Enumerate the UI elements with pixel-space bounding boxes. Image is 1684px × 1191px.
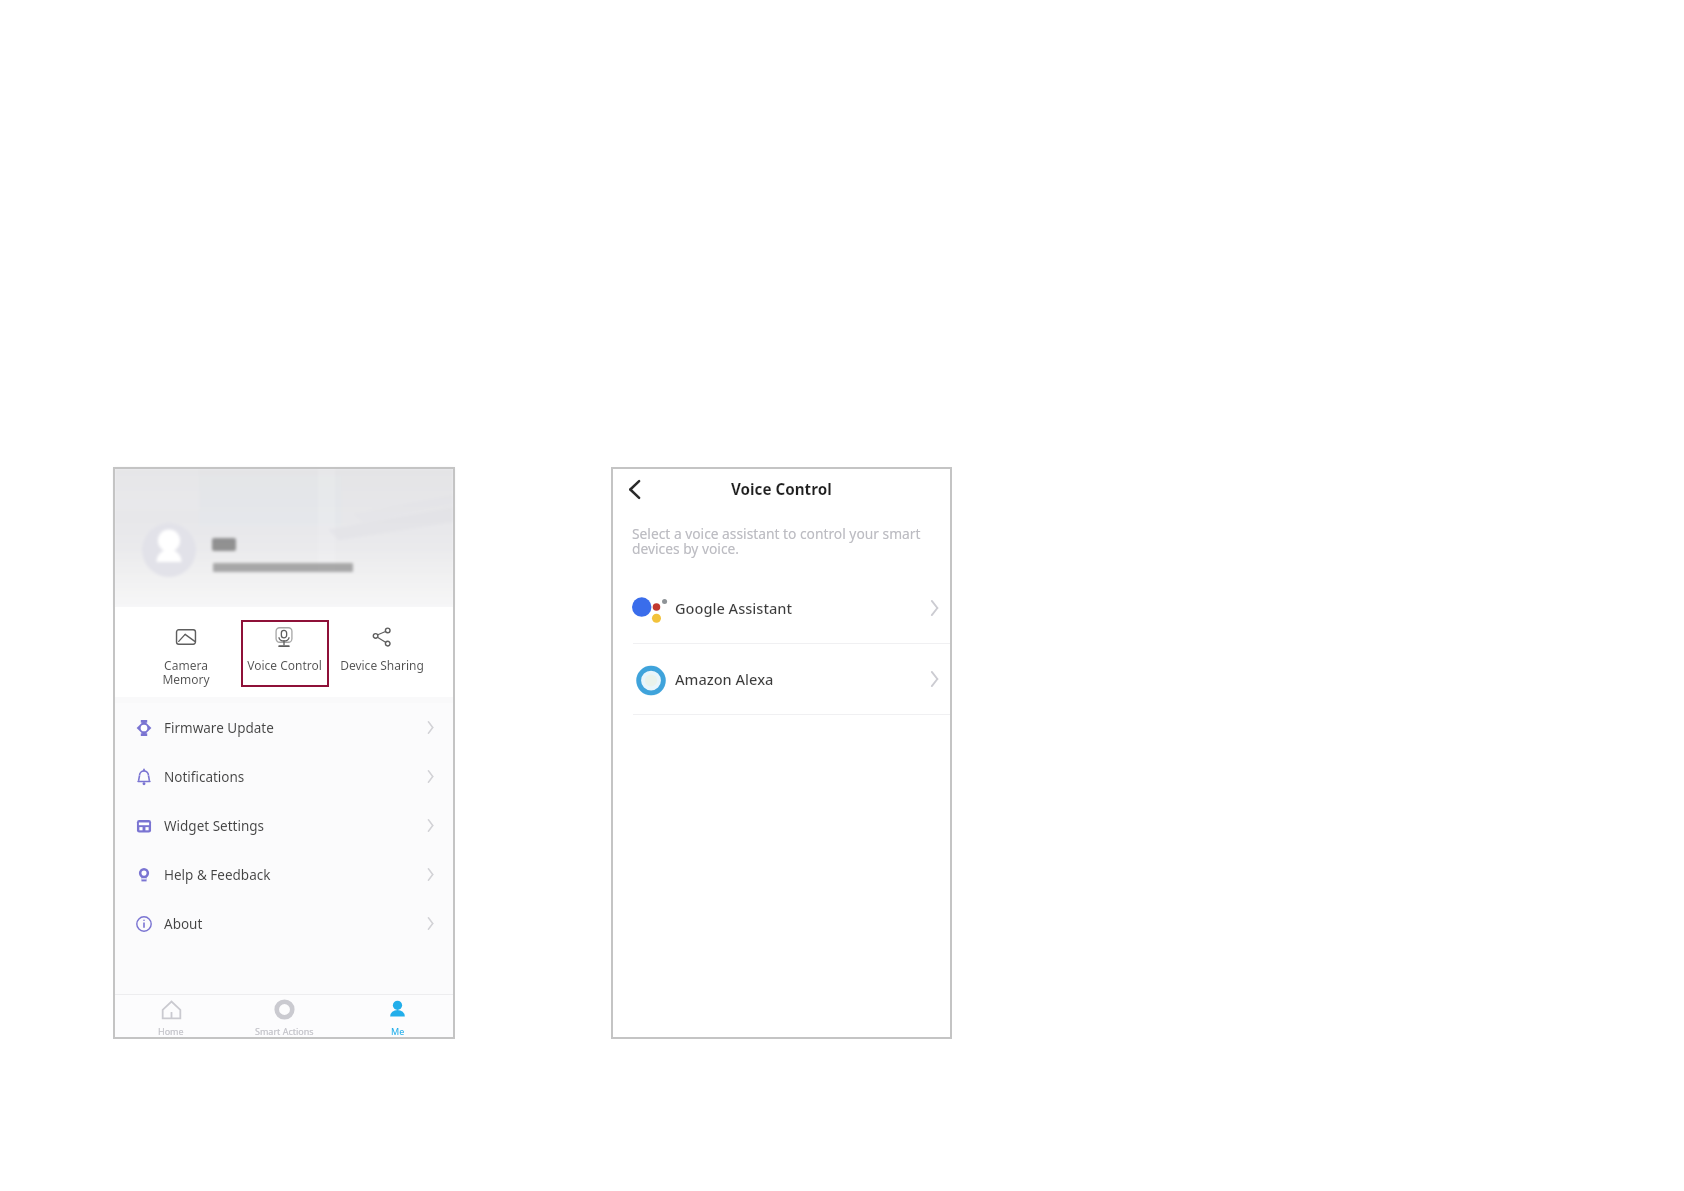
staticText: Amazon Alexa [675, 669, 774, 689]
button[interactable]: Camera Memory [137, 607, 235, 697]
staticText: Camera Memory [162, 657, 210, 687]
staticText: Smart Actions [255, 1025, 314, 1037]
staticText: Help & Feedback [164, 866, 271, 884]
staticText: Device Sharing [340, 657, 424, 673]
button[interactable]: Device Sharing [333, 607, 431, 697]
button[interactable]: Amazon Alexa [612, 644, 951, 714]
staticText: Me [391, 1025, 405, 1037]
button[interactable]: Me [341, 995, 454, 1038]
staticText: Home [158, 1025, 184, 1037]
staticText: Google Assistant [675, 598, 793, 618]
staticText: Firmware Update [164, 719, 274, 737]
staticText: Voice Control [247, 657, 322, 673]
button[interactable]: About [114, 899, 454, 948]
button[interactable]: Back [620, 475, 648, 503]
button[interactable]: Voice Control [235, 607, 333, 697]
button[interactable]: Widget Settings [114, 801, 454, 850]
button[interactable]: Help & Feedback [114, 850, 454, 899]
staticText: About [164, 915, 203, 933]
staticText: Widget Settings [164, 817, 265, 835]
button[interactable]: Home [114, 995, 228, 1038]
staticText: Select a voice assistant to control your… [632, 524, 921, 558]
button[interactable]: Google Assistant [612, 573, 951, 643]
button[interactable]: Firmware Update [114, 703, 454, 752]
button[interactable]: Notifications [114, 752, 454, 801]
staticText: Voice Control [731, 479, 832, 500]
button[interactable]: Smart Actions [228, 995, 341, 1038]
staticText: Notifications [164, 768, 245, 786]
